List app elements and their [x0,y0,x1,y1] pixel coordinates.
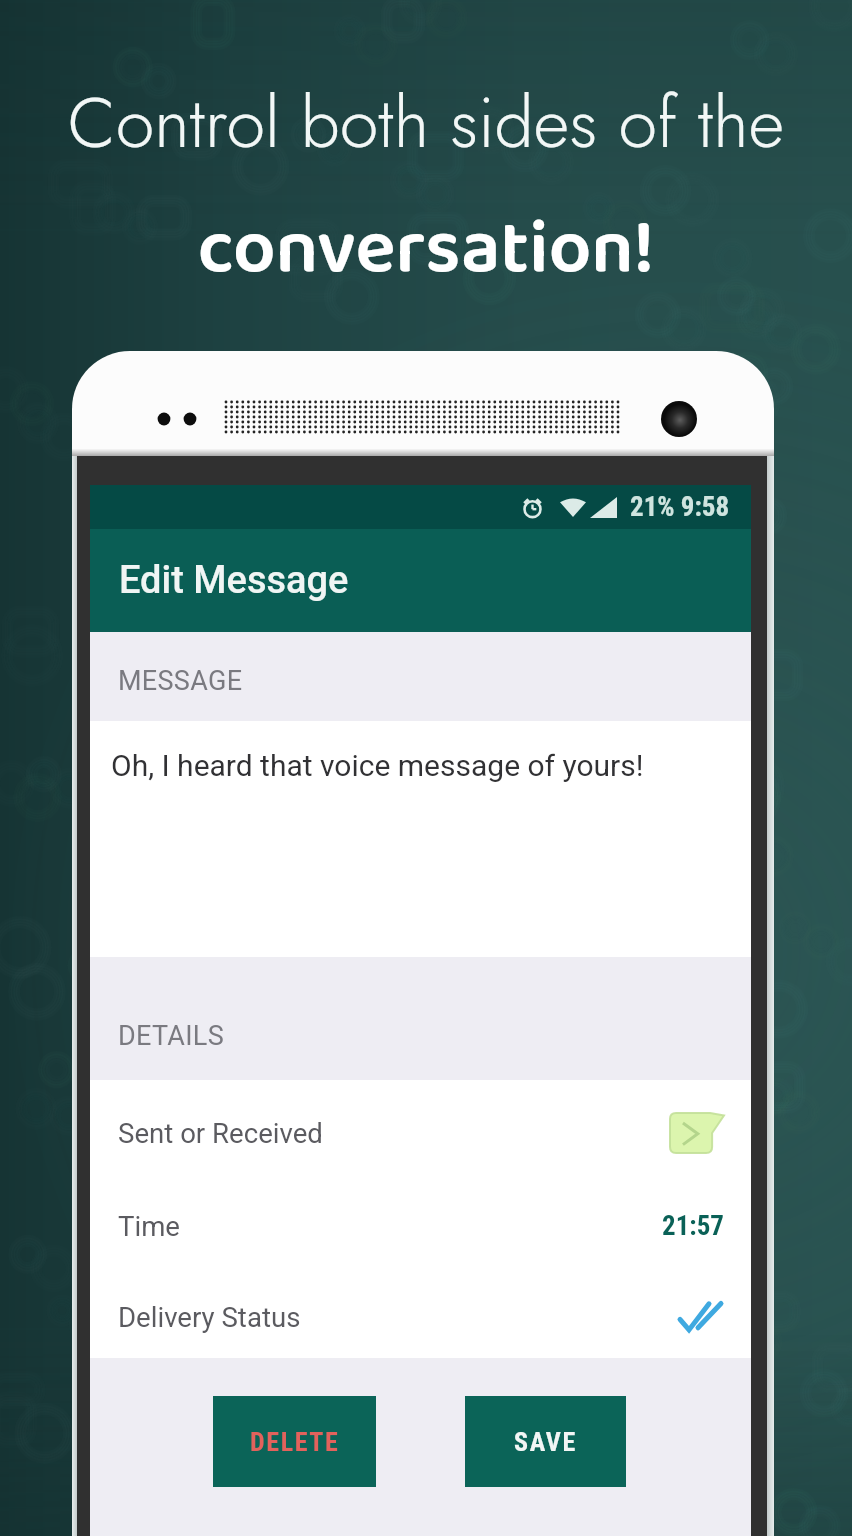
staticText: Time [118,1210,181,1242]
staticText: 21% 9:58 [630,491,730,523]
button[interactable]: Time [90,1176,751,1276]
staticText: Oh, I heard that voice message of yours! [111,748,644,783]
button[interactable]: Sent or Received [90,1089,751,1176]
other: Signal [590,497,617,518]
staticText: Sent or Received [118,1117,323,1149]
staticText: DELETE [250,1427,340,1457]
button[interactable]: Delivery Status [90,1276,751,1358]
other: Read [678,1302,724,1332]
staticText: DETAILS [118,1020,225,1052]
other: Wi-Fi [560,498,586,517]
staticText: 21:57 [662,1210,724,1242]
staticText: Edit Message [119,558,349,603]
staticText: MESSAGE [118,665,243,697]
staticText: Control both sides of the [0,72,852,173]
other: Alarm [522,497,543,518]
button[interactable]: SAVE [465,1396,626,1487]
staticText: conversation! [0,190,852,310]
staticText: Delivery Status [118,1301,301,1333]
other: Sent message [670,1113,724,1153]
staticText: SAVE [514,1427,577,1457]
button[interactable]: DELETE [213,1396,376,1487]
